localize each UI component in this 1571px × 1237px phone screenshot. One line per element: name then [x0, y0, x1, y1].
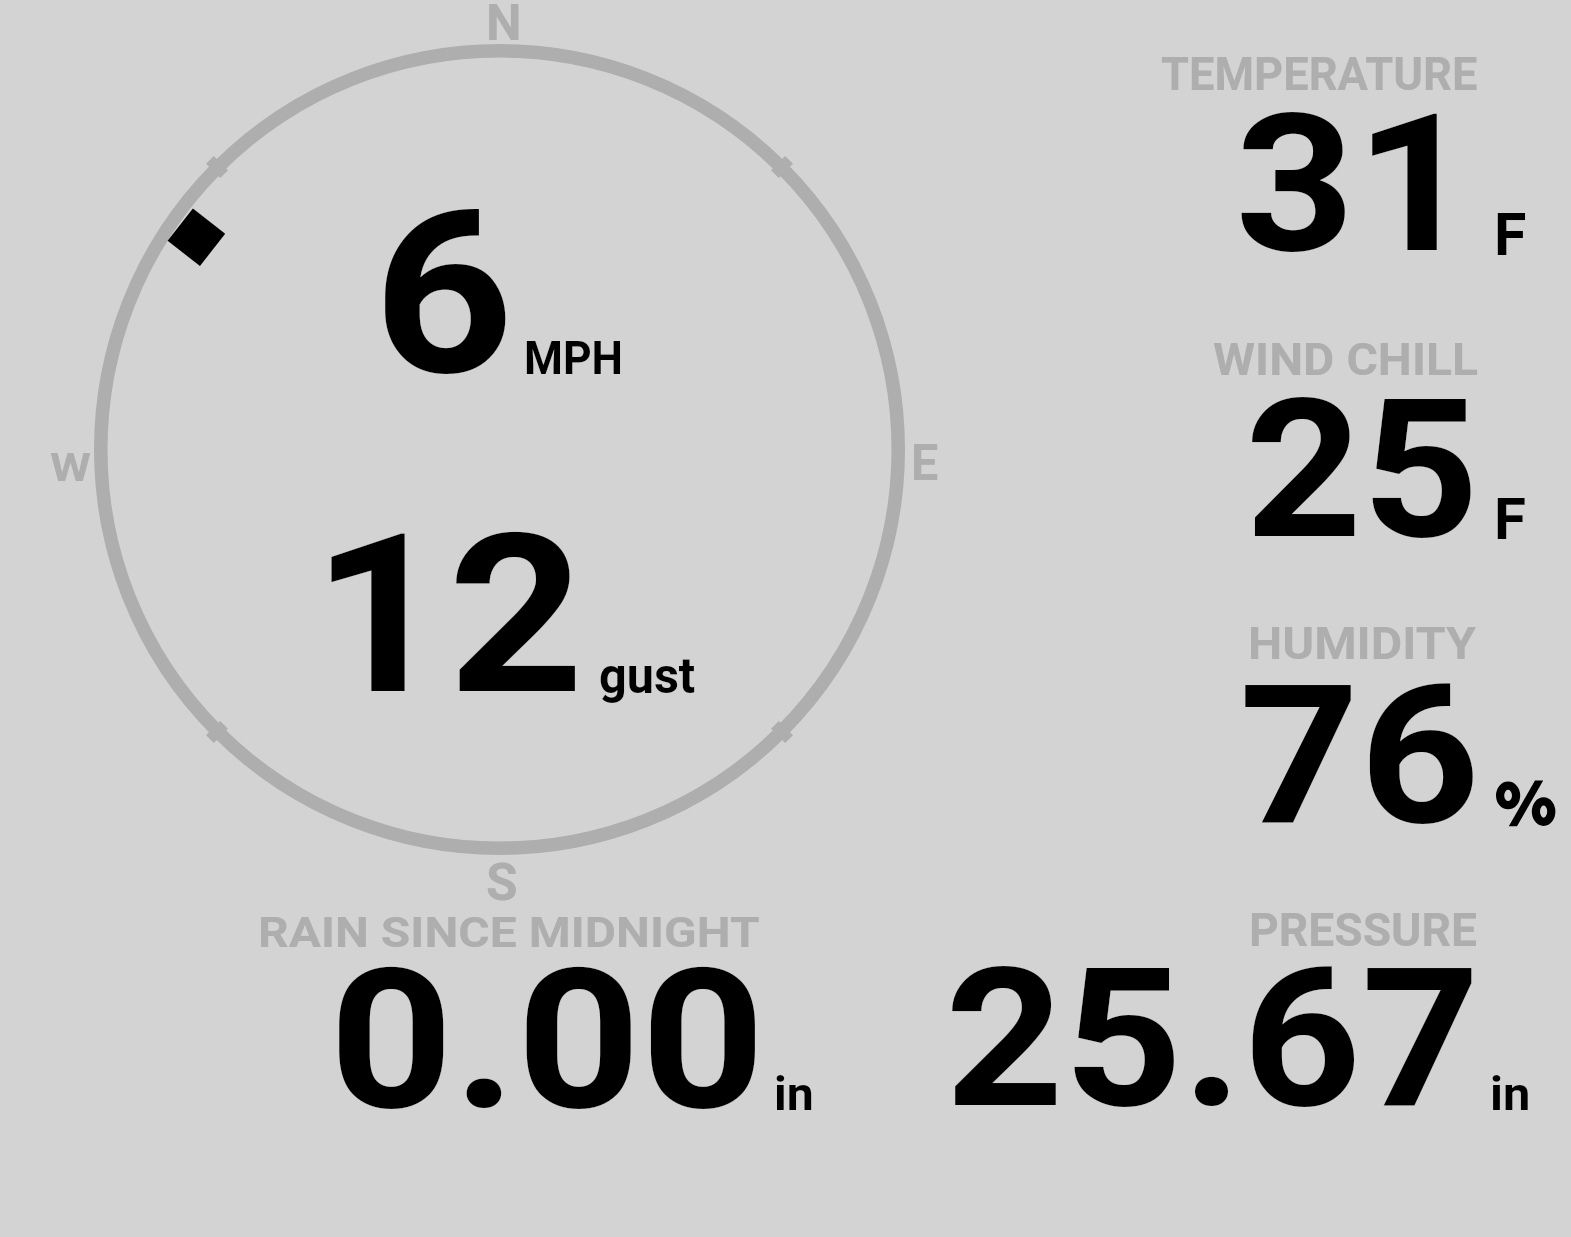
button[interactable]: Humidity 76 percent [1140, 610, 1560, 840]
staticText: E [911, 433, 939, 492]
button[interactable]: Rain since midnight 0.00 in [240, 895, 880, 1120]
staticText: 25 [1245, 356, 1480, 583]
staticText: N [486, 0, 522, 52]
staticText: HUMIDITY [1248, 617, 1477, 670]
button[interactable]: Temperature 31 F [1140, 40, 1560, 270]
button[interactable]: Wind chill 25 F [1140, 325, 1560, 555]
staticText: 12 [312, 486, 584, 745]
staticText: F [1494, 200, 1527, 269]
staticText: F [1494, 485, 1526, 553]
staticText: 25.67 [945, 926, 1480, 1152]
staticText: RAIN SINCE MIDNIGHT [258, 908, 760, 957]
staticText: in [774, 1067, 814, 1122]
staticText: 31 [1235, 73, 1476, 297]
staticText: MPH [524, 332, 623, 385]
staticText: WIND CHILL [1213, 334, 1478, 386]
button[interactable]: Pressure 25.67 in [920, 895, 1560, 1120]
staticText: 6 [373, 162, 514, 427]
staticText: in [1490, 1067, 1531, 1122]
button[interactable]: Wind direction compass [94, 44, 905, 855]
staticText: W [50, 445, 91, 490]
staticText: S [486, 851, 518, 912]
staticText: gust [599, 647, 695, 705]
staticText: 76 [1239, 643, 1481, 869]
staticText: 0.00 [329, 925, 765, 1154]
staticText: PRESSURE [1249, 903, 1478, 957]
staticText: TEMPERATURE [1161, 48, 1478, 102]
